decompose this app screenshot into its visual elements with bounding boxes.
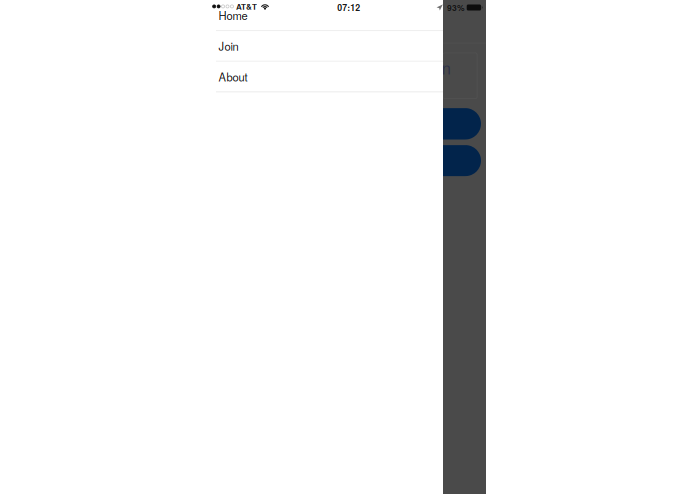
- staticText: About: [218, 68, 247, 84]
- staticText: AT&T: [236, 1, 257, 12]
- staticText: 07:12: [337, 1, 360, 14]
- button[interactable]: Home: [0, 0, 443, 31]
- button[interactable]: About: [0, 62, 443, 92]
- button[interactable]: Join: [0, 31, 443, 62]
- staticText: n: [442, 55, 451, 79]
- staticText: 93%: [447, 1, 465, 14]
- button[interactable]: Close menu: [443, 0, 486, 494]
- staticText: Join: [218, 38, 238, 54]
- staticText: Home: [218, 7, 247, 23]
